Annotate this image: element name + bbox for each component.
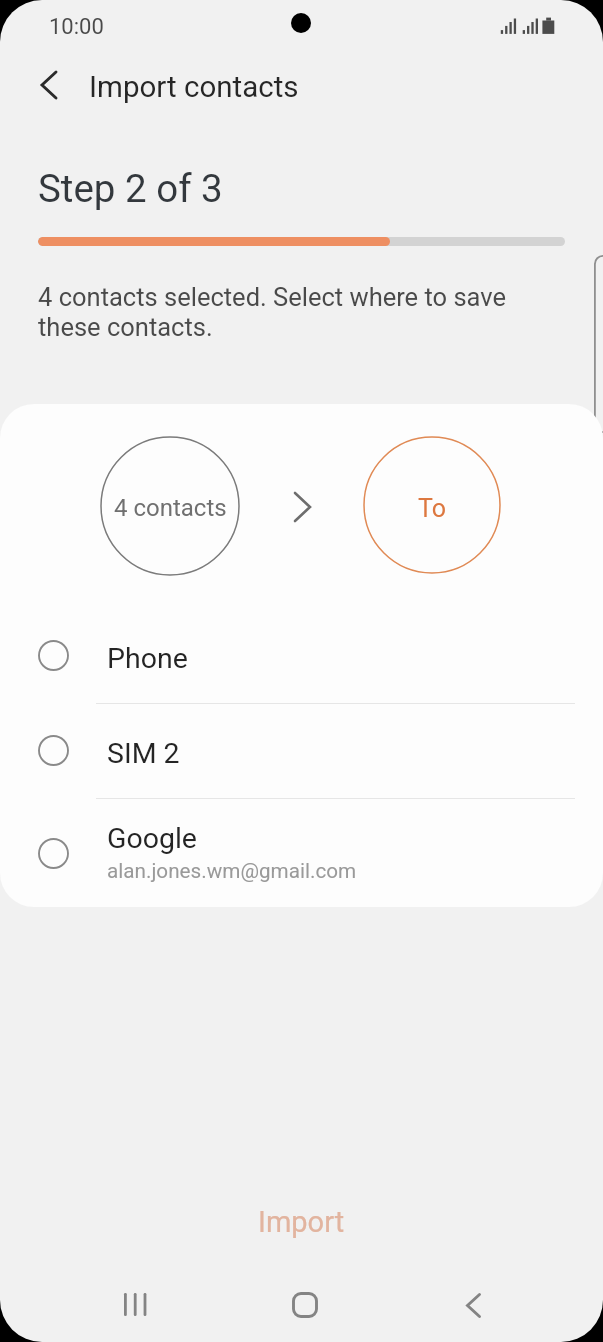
- button[interactable]: Back: [406, 1266, 542, 1342]
- staticText: alan.jones.wm@gmail.com: [107, 859, 357, 883]
- staticText: Phone: [107, 642, 188, 675]
- staticText: 4 contacts selected. Select where to sav…: [38, 282, 506, 342]
- button[interactable]: 4 contacts: [100, 436, 240, 576]
- button[interactable]: Navigate up: [21, 57, 77, 113]
- staticText: To: [418, 494, 446, 523]
- button[interactable]: SIM 2: [0, 703, 603, 798]
- staticText: 10:00: [49, 14, 104, 40]
- button[interactable]: Phone: [0, 608, 603, 703]
- staticText: 4 contacts: [114, 494, 227, 522]
- button[interactable]: Home: [237, 1266, 373, 1342]
- staticText: SIM 2: [107, 737, 180, 770]
- staticText: Import contacts: [89, 70, 299, 105]
- button[interactable]: Google: [0, 798, 603, 893]
- staticText: Google: [107, 822, 197, 855]
- button[interactable]: To: [363, 436, 501, 574]
- staticText: Step 2 of 3: [38, 166, 223, 211]
- staticText: Import: [258, 1205, 345, 1239]
- button[interactable]: Import: [0, 1188, 603, 1256]
- button[interactable]: Recents: [67, 1265, 203, 1342]
